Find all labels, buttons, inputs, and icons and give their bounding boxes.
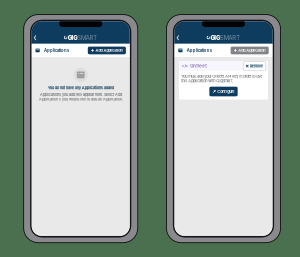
staticText: GIG	[68, 34, 77, 41]
button[interactable]: Back	[174, 33, 184, 42]
staticText: </>	[182, 64, 189, 68]
button[interactable]: Remove	[243, 62, 265, 70]
staticText: Configure	[217, 89, 234, 94]
staticText: Applications	[187, 48, 212, 53]
button[interactable]: Configure	[209, 87, 238, 96]
staticText: You do not have any Applications added	[48, 85, 114, 90]
staticText: Add Application	[238, 48, 265, 53]
staticText: Applications you add will appear here. S…	[39, 92, 123, 101]
button[interactable]: Back	[32, 33, 41, 42]
staticText: Applications	[44, 48, 69, 53]
staticText: You must add your Onfleet API key in ord…	[181, 74, 262, 83]
staticText: SMART	[220, 34, 240, 41]
staticText: Add Application	[95, 48, 122, 53]
staticText: SMART	[77, 34, 97, 41]
staticText: Remove	[250, 64, 263, 68]
staticText: Onfleet	[190, 63, 207, 69]
staticText: GIG	[210, 34, 220, 41]
button[interactable]: Add Application	[88, 47, 126, 54]
button[interactable]: Add Application	[231, 47, 269, 54]
